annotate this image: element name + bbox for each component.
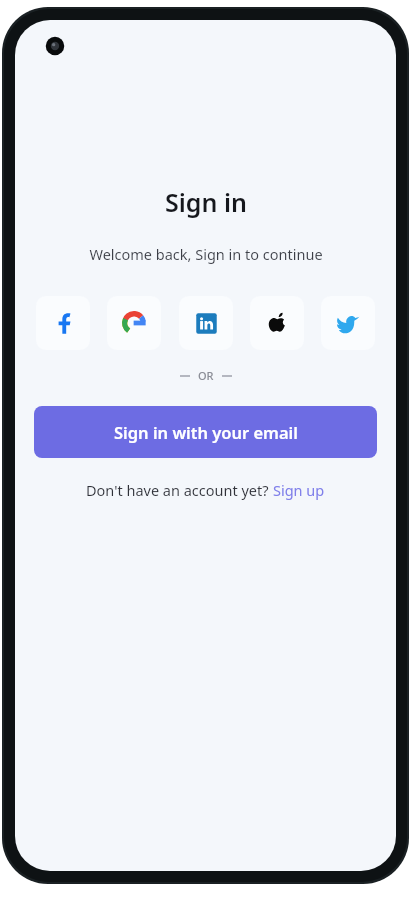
staticText: Welcome back, Sign in to continue — [89, 244, 323, 264]
button[interactable]: Sign up — [273, 480, 325, 500]
button[interactable]: Sign in with Apple — [250, 296, 304, 350]
button[interactable]: Sign in with Twitter — [321, 296, 375, 350]
staticText: OR — [198, 368, 214, 383]
other: Front camera — [44, 35, 66, 57]
staticText: Sign in with your email — [114, 421, 298, 443]
button[interactable]: Sign in with Google — [107, 296, 161, 350]
staticText: Sign in — [165, 185, 247, 219]
staticText: Don't have an account yet? — [86, 480, 273, 500]
button[interactable]: Sign in with LinkedIn — [179, 296, 233, 350]
staticText: Sign up — [273, 480, 325, 500]
button[interactable]: Sign in with your email — [34, 406, 377, 458]
button[interactable]: Sign in with Facebook — [36, 296, 90, 350]
